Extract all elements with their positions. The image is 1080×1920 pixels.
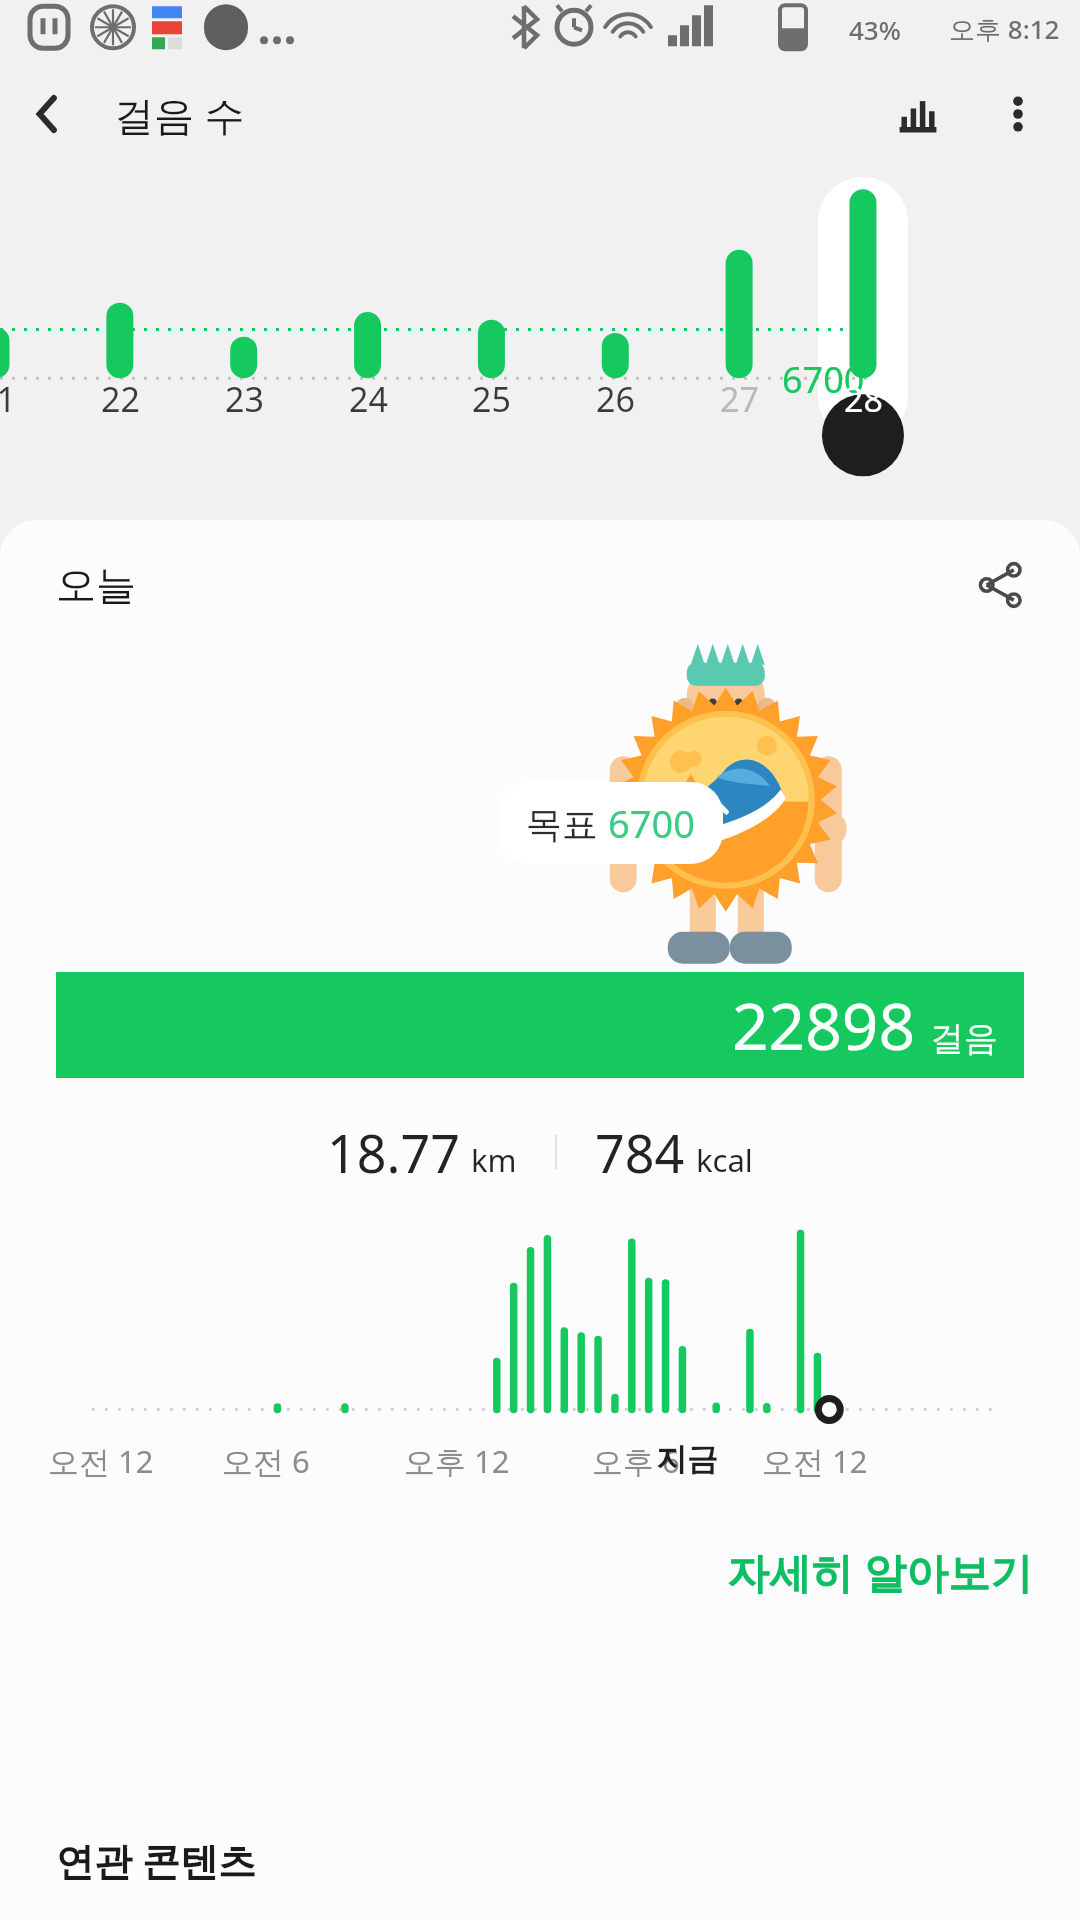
staticText: 오전 6 xyxy=(222,1440,310,1482)
staticText: 21 xyxy=(0,376,16,422)
button[interactable]: 25 xyxy=(451,366,531,432)
staticText: 22898 xyxy=(732,982,916,1069)
staticText: 오전 12 xyxy=(48,1440,154,1482)
staticText: 23 xyxy=(225,376,264,422)
button[interactable]: 자세히 알아보기 xyxy=(719,1533,1040,1610)
staticText: 18.77 xyxy=(327,1117,460,1188)
staticText: 걸음 수 xyxy=(114,87,245,142)
button[interactable]: 22 xyxy=(80,366,160,432)
staticText: 28 xyxy=(844,376,883,422)
staticText: 25 xyxy=(472,376,511,422)
button[interactable]: 26 xyxy=(575,366,655,432)
button[interactable]: 24 xyxy=(328,366,408,432)
button[interactable]: 28 xyxy=(823,366,903,432)
staticText: 오늘 xyxy=(56,560,136,610)
staticText: 24 xyxy=(349,376,388,422)
staticText: 자세히 알아보기 xyxy=(727,1543,1032,1600)
staticText: 목표 xyxy=(526,799,608,848)
staticText: 오전 12 xyxy=(762,1440,868,1482)
button[interactable]: 18.77 xyxy=(327,1117,517,1188)
button[interactable]: 22898 xyxy=(56,972,1024,1078)
staticText: 784 xyxy=(595,1117,685,1188)
staticText: 오후 6 xyxy=(592,1440,680,1482)
button[interactable]: More options xyxy=(968,64,1068,164)
staticText: 6700 xyxy=(608,797,695,849)
staticText: 27 xyxy=(720,376,759,422)
staticText: 6700 xyxy=(782,355,865,404)
staticText: 22 xyxy=(101,376,140,422)
staticText: 지금 xyxy=(656,1440,718,1479)
button[interactable]: 27 xyxy=(699,366,779,432)
button[interactable]: Charts xyxy=(868,64,968,164)
staticText: 오후 12 xyxy=(404,1440,510,1482)
button[interactable]: 21 xyxy=(0,366,36,432)
staticText: 걸음 xyxy=(930,1017,998,1060)
staticText: km xyxy=(471,1139,517,1181)
staticText: 26 xyxy=(596,376,635,422)
button[interactable]: Back xyxy=(0,66,96,162)
button[interactable]: Share xyxy=(956,541,1044,629)
button[interactable]: 23 xyxy=(204,366,284,432)
staticText: 43% xyxy=(849,12,901,47)
staticText: 오후 8:12 xyxy=(949,11,1060,47)
button[interactable]: 784 xyxy=(595,1117,753,1188)
staticText: 연관 콘텐츠 xyxy=(56,1834,256,1886)
staticText: kcal xyxy=(696,1139,753,1181)
